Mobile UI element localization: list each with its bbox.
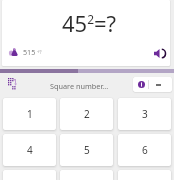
staticText: 515: [23, 47, 36, 57]
button[interactable]: 2: [60, 98, 113, 130]
staticText: +?: [37, 49, 42, 55]
staticText: 5: [84, 143, 90, 157]
staticText: 2: [84, 107, 90, 121]
staticText: Square number...: [50, 81, 109, 91]
button[interactable]: 5: [60, 134, 113, 166]
button[interactable]: Sound: [154, 49, 166, 58]
button[interactable]: 515: [9, 47, 42, 57]
button[interactable]: Pause: [138, 81, 145, 88]
button[interactable]: 6: [118, 134, 171, 166]
button[interactable]: Categories: [8, 78, 18, 91]
button[interactable]: 4: [3, 134, 56, 166]
staticText: 6: [142, 143, 148, 157]
staticText: 452=?: [62, 8, 117, 38]
staticText: 1: [27, 107, 33, 121]
button[interactable]: More: [153, 80, 163, 90]
button[interactable]: 3: [118, 98, 171, 130]
staticText: 4: [27, 143, 33, 157]
staticText: 3: [142, 107, 148, 121]
button[interactable]: 1: [3, 98, 56, 130]
